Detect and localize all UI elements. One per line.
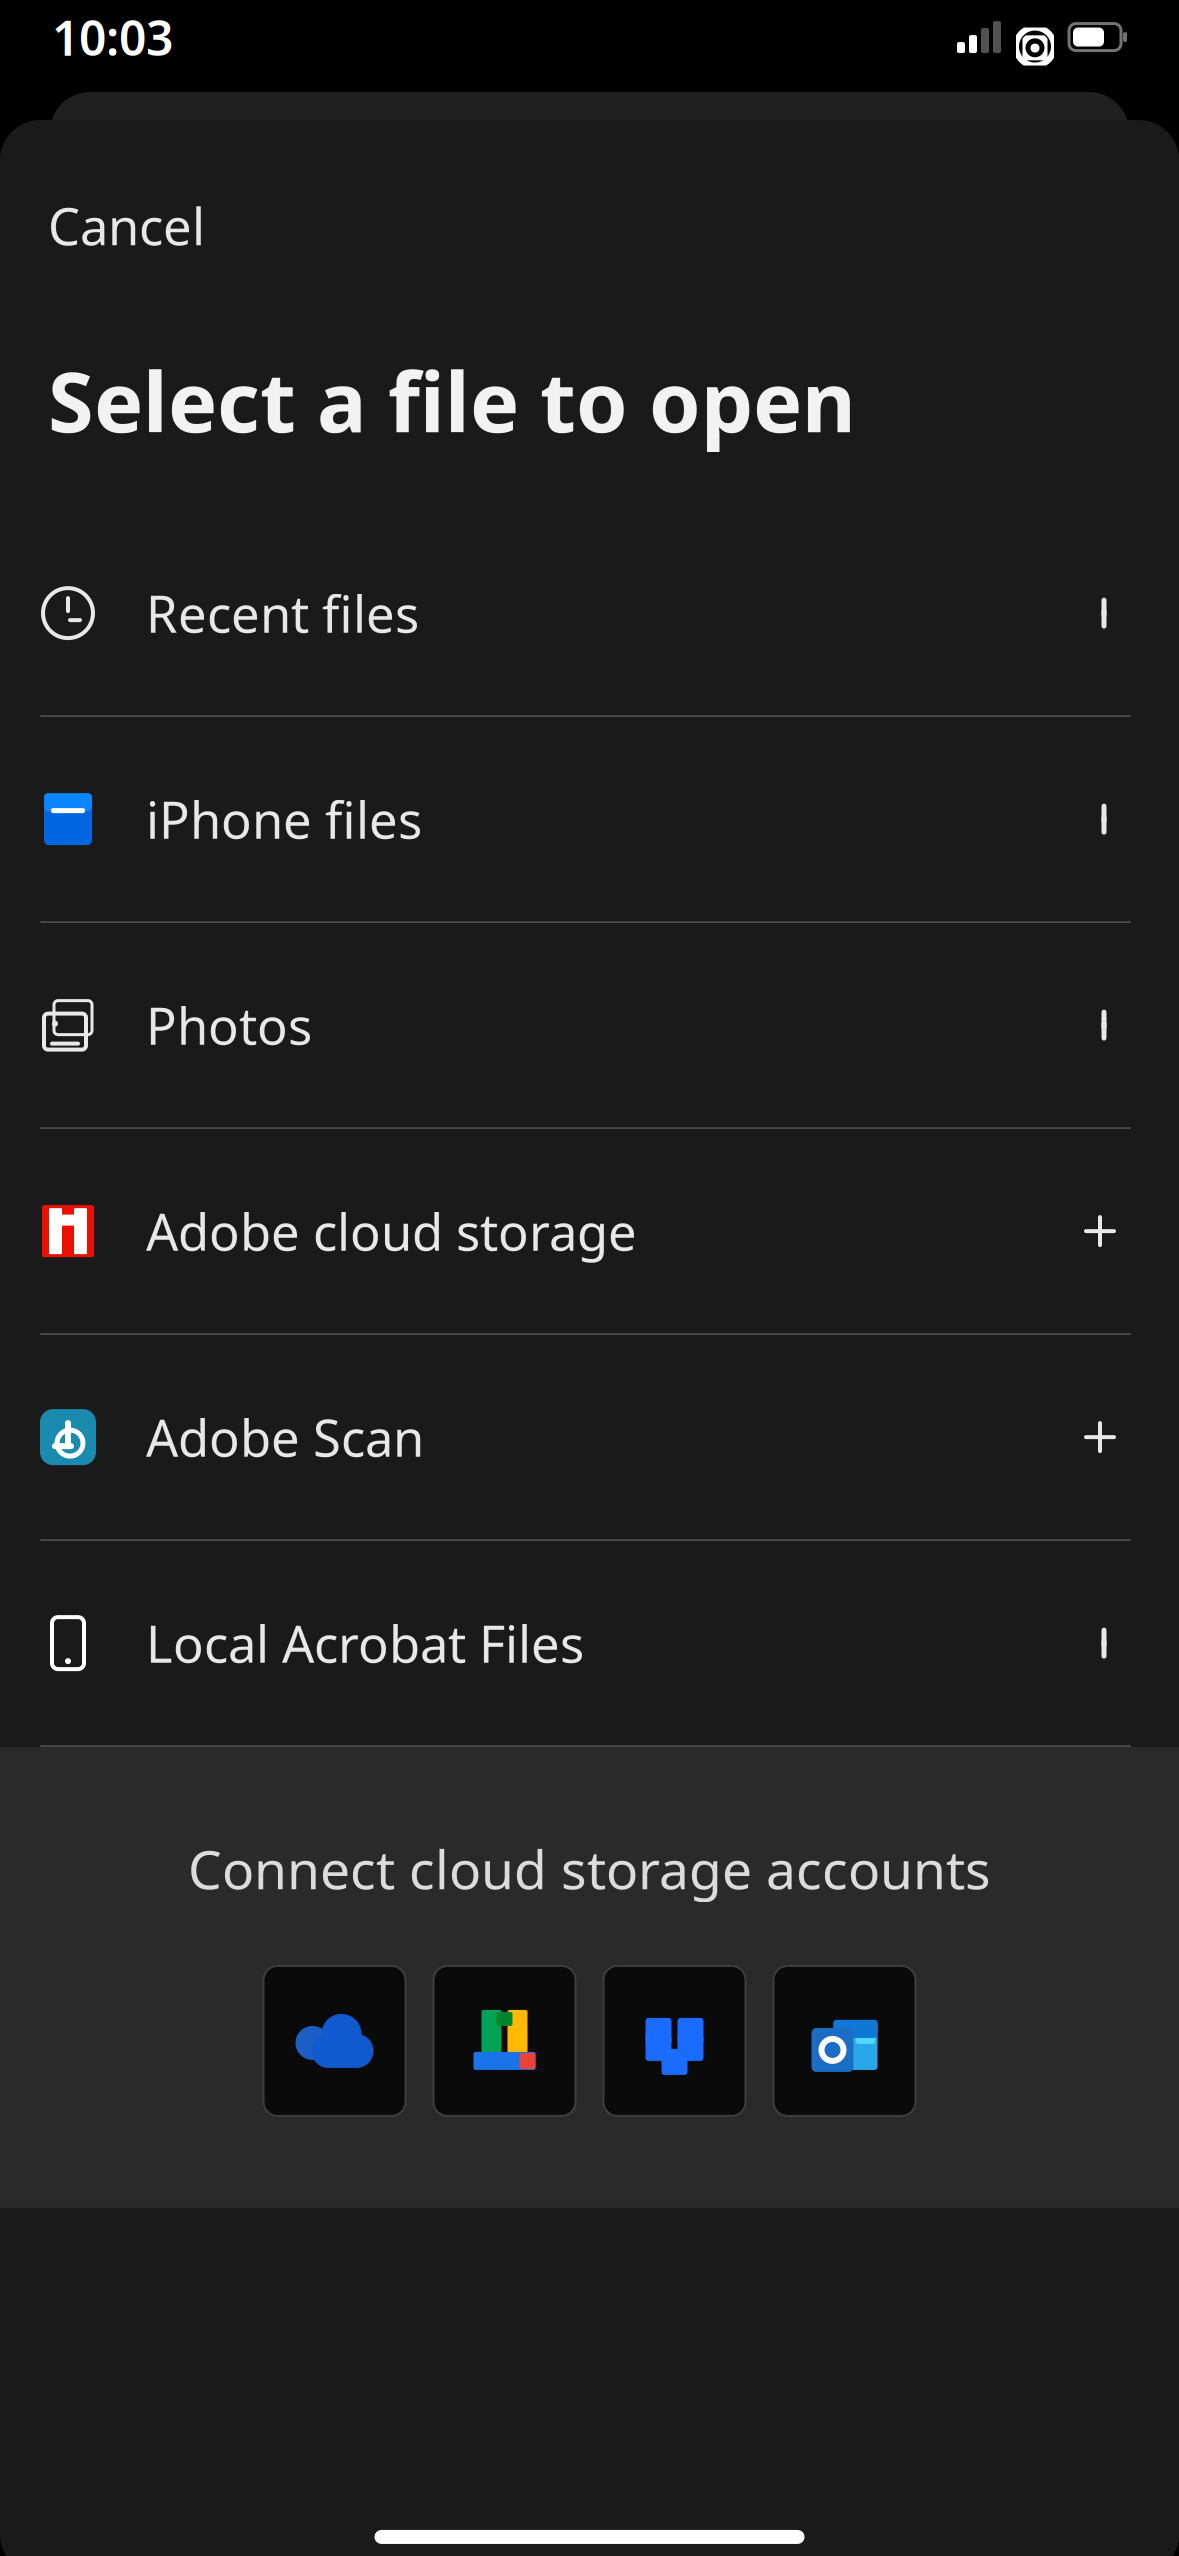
button[interactable]: Adobe Scan [0,1335,1179,1539]
button[interactable]: Cancel [0,168,253,283]
button[interactable]: Connect Google Drive [433,1966,575,2116]
staticText: 10:03 [52,5,173,69]
staticText: Local Acrobat Files [146,1609,584,1677]
staticText: iPhone files [146,785,422,853]
staticText: Adobe Scan [146,1403,424,1471]
staticText: Cancel [48,192,205,259]
staticText: Adobe cloud storage [146,1197,637,1265]
button[interactable]: Connect OneDrive [263,1966,405,2116]
button[interactable]: Adobe cloud storage [0,1129,1179,1333]
button[interactable]: Connect Dropbox [603,1966,745,2116]
staticText: Select a file to open [48,345,856,455]
staticText: Recent files [146,579,419,647]
button[interactable]: Connect Outlook [773,1966,915,2116]
button[interactable]: Recent files [0,511,1179,715]
button[interactable]: Local Acrobat Files [0,1541,1179,1745]
staticText: Photos [146,991,312,1059]
button[interactable]: iPhone files [0,717,1179,921]
button[interactable]: Photos [0,923,1179,1127]
staticText: Connect cloud storage accounts [188,1833,991,1904]
